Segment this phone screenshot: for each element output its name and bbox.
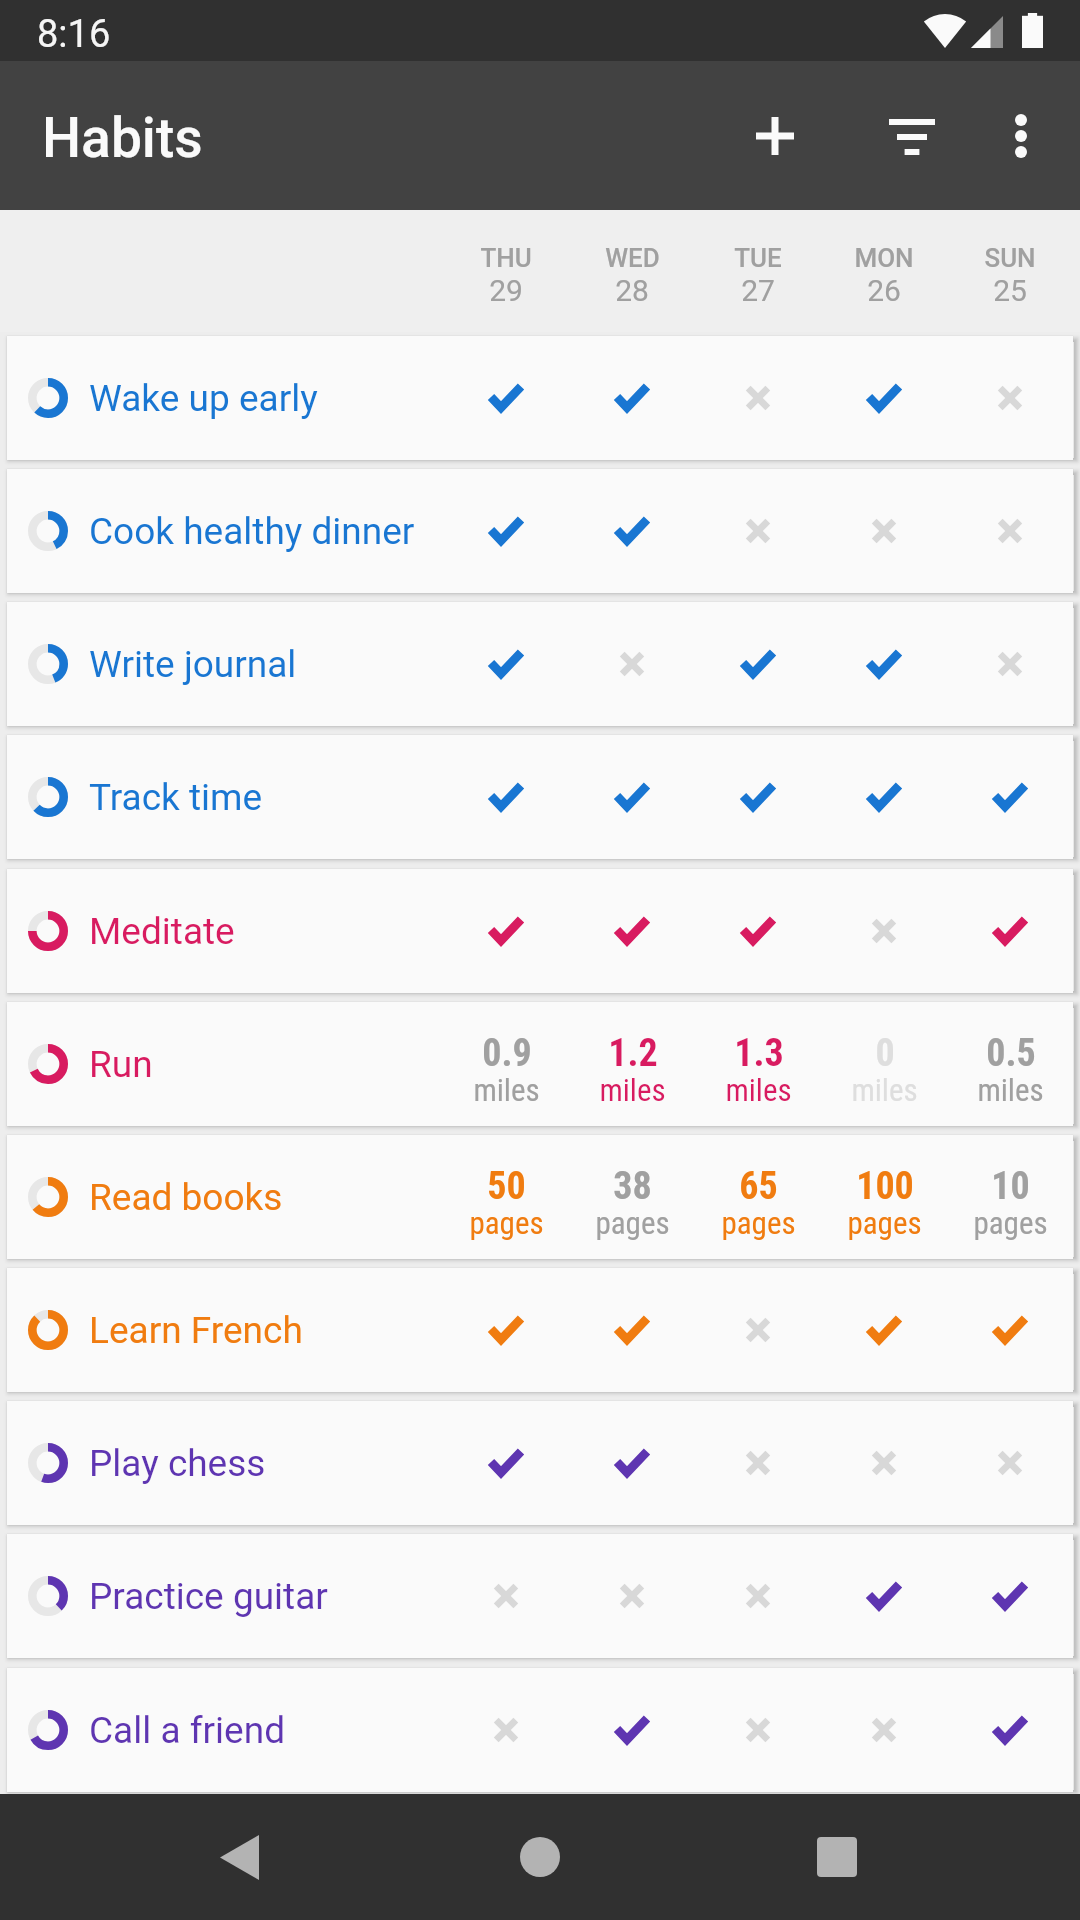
- button[interactable]: TUE: [695, 210, 821, 332]
- button[interactable]: [821, 1668, 947, 1792]
- button[interactable]: [695, 1668, 821, 1792]
- button[interactable]: [947, 469, 1073, 593]
- button[interactable]: Run: [7, 1002, 1073, 1126]
- button[interactable]: 0.5: [947, 1002, 1073, 1126]
- staticText: Practice guitar: [89, 1575, 328, 1618]
- button[interactable]: Recent apps: [792, 1812, 882, 1902]
- button[interactable]: [695, 1401, 821, 1525]
- button[interactable]: [695, 602, 821, 726]
- button[interactable]: [569, 1668, 695, 1792]
- button[interactable]: 100: [821, 1135, 947, 1259]
- button[interactable]: [443, 1268, 569, 1392]
- button[interactable]: [443, 336, 569, 460]
- button[interactable]: [821, 336, 947, 460]
- button[interactable]: [947, 602, 1073, 726]
- staticText: WED: [605, 243, 660, 273]
- button[interactable]: [569, 602, 695, 726]
- staticText: miles: [977, 1072, 1044, 1108]
- button[interactable]: [821, 469, 947, 593]
- staticText: 0.5: [986, 1031, 1036, 1076]
- button[interactable]: [443, 1401, 569, 1525]
- button[interactable]: [569, 735, 695, 859]
- staticText: 0: [875, 1031, 895, 1076]
- button[interactable]: [947, 1534, 1073, 1658]
- staticText: 10: [991, 1164, 1030, 1209]
- button[interactable]: 10: [947, 1135, 1073, 1259]
- staticText: THU: [480, 243, 532, 273]
- button[interactable]: Learn French: [7, 1268, 1073, 1392]
- button[interactable]: [443, 469, 569, 593]
- staticText: Read books: [89, 1176, 283, 1219]
- staticText: miles: [599, 1072, 666, 1108]
- button[interactable]: THU: [443, 210, 569, 332]
- button[interactable]: 0: [821, 1002, 947, 1126]
- button[interactable]: [947, 869, 1073, 993]
- button[interactable]: [569, 869, 695, 993]
- button[interactable]: Cook healthy dinner: [7, 469, 1073, 593]
- button[interactable]: [947, 1401, 1073, 1525]
- staticText: Write journal: [89, 643, 297, 686]
- staticText: Track time: [89, 776, 263, 819]
- button[interactable]: Home: [495, 1812, 585, 1902]
- staticText: 25: [993, 273, 1027, 308]
- staticText: miles: [725, 1072, 792, 1108]
- button[interactable]: [569, 469, 695, 593]
- button[interactable]: [695, 1534, 821, 1658]
- button[interactable]: [443, 869, 569, 993]
- button[interactable]: [695, 1268, 821, 1392]
- staticText: 8:16: [37, 12, 111, 57]
- button[interactable]: [947, 1268, 1073, 1392]
- button[interactable]: Practice guitar: [7, 1534, 1073, 1658]
- button[interactable]: [821, 1401, 947, 1525]
- button[interactable]: [821, 869, 947, 993]
- button[interactable]: [695, 869, 821, 993]
- staticText: miles: [851, 1072, 918, 1108]
- button[interactable]: [821, 1534, 947, 1658]
- staticText: 28: [615, 273, 649, 308]
- button[interactable]: [947, 1668, 1073, 1792]
- staticText: 26: [867, 273, 901, 308]
- button[interactable]: [569, 1534, 695, 1658]
- button[interactable]: 50: [443, 1135, 569, 1259]
- button[interactable]: [947, 735, 1073, 859]
- button[interactable]: Wake up early: [7, 336, 1073, 460]
- staticText: 29: [489, 273, 523, 308]
- button[interactable]: [695, 735, 821, 859]
- staticText: MON: [854, 243, 914, 273]
- button[interactable]: MON: [821, 210, 947, 332]
- button[interactable]: [443, 735, 569, 859]
- staticText: Meditate: [89, 910, 235, 953]
- button[interactable]: [695, 469, 821, 593]
- button[interactable]: Play chess: [7, 1401, 1073, 1525]
- button[interactable]: [443, 1668, 569, 1792]
- staticText: 100: [856, 1164, 914, 1209]
- button[interactable]: [443, 1534, 569, 1658]
- button[interactable]: 65: [695, 1135, 821, 1259]
- button[interactable]: [569, 1401, 695, 1525]
- button[interactable]: [569, 1268, 695, 1392]
- button[interactable]: [695, 336, 821, 460]
- button[interactable]: Filter: [862, 61, 962, 210]
- button[interactable]: [443, 602, 569, 726]
- button[interactable]: [821, 602, 947, 726]
- staticText: TUE: [734, 243, 782, 273]
- button[interactable]: Meditate: [7, 869, 1073, 993]
- button[interactable]: [569, 336, 695, 460]
- button[interactable]: 0.9: [443, 1002, 569, 1126]
- button[interactable]: [821, 735, 947, 859]
- button[interactable]: Read books: [7, 1135, 1073, 1259]
- button[interactable]: 1.3: [695, 1002, 821, 1126]
- button[interactable]: More options: [962, 61, 1080, 210]
- button[interactable]: [821, 1268, 947, 1392]
- button[interactable]: WED: [569, 210, 695, 332]
- button[interactable]: [947, 336, 1073, 460]
- button[interactable]: Write journal: [7, 602, 1073, 726]
- button[interactable]: Track time: [7, 735, 1073, 859]
- button[interactable]: SUN: [947, 210, 1073, 332]
- staticText: miles: [473, 1072, 540, 1108]
- button[interactable]: 1.2: [569, 1002, 695, 1126]
- button[interactable]: 38: [569, 1135, 695, 1259]
- button[interactable]: Back: [194, 1812, 284, 1902]
- button[interactable]: Call a friend: [7, 1668, 1073, 1792]
- button[interactable]: Add habit: [687, 61, 862, 210]
